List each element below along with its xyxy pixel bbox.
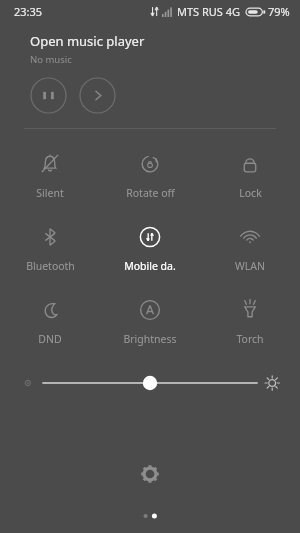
staticText: No music <box>30 53 72 66</box>
button[interactable]: Silent <box>0 149 100 202</box>
button[interactable]: Settings <box>133 457 167 491</box>
button[interactable] <box>24 366 276 400</box>
staticText: MTS RUS 4G <box>177 4 241 19</box>
button[interactable]: Pause <box>30 77 67 114</box>
button[interactable]: Mobile da. <box>100 222 200 275</box>
staticText: Bluetooth <box>26 259 75 273</box>
button[interactable]: WLAN <box>200 222 300 275</box>
button[interactable]: Torch <box>200 295 300 348</box>
staticText: Silent <box>36 186 64 200</box>
staticText: 23:35 <box>14 4 43 19</box>
staticText: Mobile da. <box>124 259 176 273</box>
staticText: Torch <box>236 332 264 346</box>
button[interactable]: Brightness <box>100 295 200 348</box>
button[interactable]: Next <box>79 77 116 114</box>
staticText: WLAN <box>235 259 265 273</box>
staticText: Rotate off <box>126 186 175 200</box>
staticText: Brightness <box>123 332 177 346</box>
button[interactable]: Rotate off <box>100 149 200 202</box>
staticText: 79% <box>268 4 290 19</box>
staticText: Lock <box>239 186 262 200</box>
button[interactable]: Open music player <box>30 32 145 50</box>
button[interactable]: Bluetooth <box>0 222 100 275</box>
button[interactable]: DND <box>0 295 100 348</box>
staticText: DND <box>38 332 62 346</box>
button[interactable]: Lock <box>200 149 300 202</box>
